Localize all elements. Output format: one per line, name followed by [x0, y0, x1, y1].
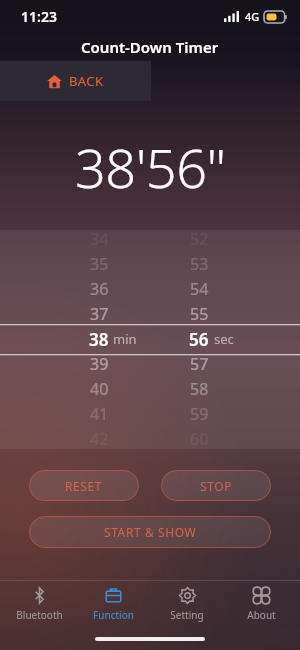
staticText: 57 [190, 353, 209, 375]
staticText: 39 [90, 353, 109, 375]
button[interactable]: Setting [152, 580, 222, 628]
staticText: 58 [190, 378, 209, 400]
staticText: 38 [89, 328, 109, 350]
staticText: 52 [190, 228, 209, 250]
staticText: 34 [90, 228, 109, 250]
button[interactable]: BACK [0, 61, 151, 101]
other: Function [104, 586, 123, 605]
staticText: min [113, 330, 137, 348]
button[interactable]: RESET [29, 470, 139, 501]
other: About [252, 586, 271, 605]
staticText: 59 [190, 403, 209, 425]
staticText: Bluetooth [16, 608, 63, 622]
staticText: 4G [245, 9, 260, 24]
staticText: 60 [190, 428, 209, 450]
other: Setting [178, 586, 197, 605]
staticText: 56 [189, 328, 209, 350]
other: Bluetooth [30, 586, 49, 605]
staticText: Function [93, 608, 134, 622]
staticText: 55 [190, 303, 209, 325]
staticText: Count-Down Timer [81, 37, 219, 57]
staticText: Setting [170, 608, 204, 622]
staticText: sec [214, 330, 234, 348]
staticText: 38'56" [75, 130, 226, 204]
staticText: 53 [190, 253, 209, 275]
staticText: About [247, 608, 276, 622]
staticText: 41 [90, 403, 109, 425]
button[interactable]: About [226, 580, 296, 628]
button[interactable]: STOP [161, 470, 271, 501]
staticText: 11:23 [21, 7, 57, 26]
staticText: 36 [90, 278, 109, 300]
button[interactable]: START & SHOW [29, 516, 271, 548]
staticText: RESET [65, 478, 103, 494]
staticText: STOP [200, 478, 233, 494]
button[interactable]: Function [78, 580, 148, 628]
staticText: 40 [90, 378, 109, 400]
staticText: 42 [90, 428, 109, 450]
staticText: 54 [190, 278, 209, 300]
button[interactable]: Bluetooth [4, 580, 74, 628]
staticText: 35 [90, 253, 109, 275]
staticText: START & SHOW [104, 524, 197, 540]
staticText: BACK [69, 72, 104, 90]
staticText: 37 [90, 303, 109, 325]
